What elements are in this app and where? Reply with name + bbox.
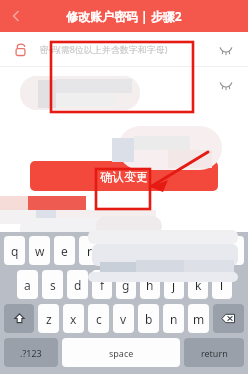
button[interactable]: e: [54, 236, 75, 265]
staticText: r: [87, 243, 92, 259]
staticText: .?123: [20, 347, 42, 359]
staticText: e: [61, 243, 68, 259]
button[interactable]: a: [17, 270, 38, 299]
button[interactable]: Back: [0, 0, 32, 32]
button[interactable]: o: [200, 236, 220, 265]
staticText: f: [100, 277, 105, 293]
staticText: l: [220, 277, 224, 293]
button[interactable]: q: [4, 236, 25, 265]
button[interactable]: u: [152, 236, 172, 265]
staticText: q: [11, 243, 19, 259]
button[interactable]: Toggle password visibility: [0, 67, 248, 101]
button[interactable]: t: [104, 236, 124, 265]
staticText: m: [193, 311, 205, 327]
staticText: 密码(需8位以上并含数字和字母): [40, 43, 168, 55]
button[interactable]: 密码(需8位以上并含数字和字母): [0, 32, 248, 66]
button[interactable]: i: [176, 236, 196, 265]
staticText: space: [109, 347, 134, 359]
button[interactable]: v: [113, 304, 134, 333]
button[interactable]: g: [116, 270, 136, 299]
button[interactable]: d: [67, 270, 88, 299]
staticText: c: [96, 311, 102, 327]
staticText: g: [122, 277, 130, 293]
button[interactable]: f: [92, 270, 112, 299]
button[interactable]: n: [163, 304, 184, 333]
staticText: h: [146, 277, 154, 293]
button[interactable]: l: [212, 270, 232, 299]
button[interactable]: p: [224, 236, 244, 265]
staticText: d: [74, 277, 82, 293]
staticText: x: [70, 311, 77, 327]
staticText: s: [50, 277, 56, 293]
staticText: j: [172, 277, 176, 293]
button[interactable]: Toggle password visibility: [204, 32, 248, 66]
button[interactable]: h: [140, 270, 160, 299]
button[interactable]: space: [62, 338, 180, 367]
staticText: b: [145, 311, 153, 327]
button[interactable]: s: [42, 270, 63, 299]
button[interactable]: k: [188, 270, 208, 299]
staticText: a: [24, 277, 31, 293]
staticText: return: [201, 347, 228, 359]
button[interactable]: x: [63, 304, 84, 333]
button[interactable]: c: [88, 304, 109, 333]
button[interactable]: y: [128, 236, 148, 265]
button[interactable]: b: [138, 304, 159, 333]
button[interactable]: Backspace: [213, 304, 244, 333]
staticText: n: [170, 311, 178, 327]
staticText: 确认变更: [100, 169, 148, 184]
button[interactable]: 确认变更: [30, 161, 218, 191]
button[interactable]: r: [79, 236, 100, 265]
staticText: z: [46, 311, 52, 327]
button[interactable]: m: [188, 304, 209, 333]
button[interactable]: .?123: [4, 338, 58, 367]
button[interactable]: return: [184, 338, 244, 367]
staticText: k: [195, 277, 202, 293]
button[interactable]: z: [38, 304, 59, 333]
staticText: w: [35, 243, 45, 259]
button[interactable]: Shift: [4, 304, 34, 333]
button[interactable]: w: [29, 236, 50, 265]
staticText: 修改账户密码 | 步骤2: [66, 8, 182, 24]
staticText: p: [230, 243, 238, 259]
staticText: v: [120, 311, 127, 327]
button[interactable]: Toggle password visibility: [204, 67, 248, 101]
button[interactable]: j: [164, 270, 184, 299]
